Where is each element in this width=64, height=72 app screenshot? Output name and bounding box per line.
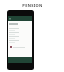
button[interactable] — [8, 39, 32, 43]
button[interactable]: Menu — [8, 16, 32, 21]
other: Menu — [9, 18, 11, 20]
button[interactable] — [8, 27, 32, 31]
button[interactable] — [8, 45, 32, 49]
button[interactable] — [8, 31, 32, 35]
button[interactable] — [8, 35, 32, 39]
staticText: PENSION — [22, 3, 43, 8]
